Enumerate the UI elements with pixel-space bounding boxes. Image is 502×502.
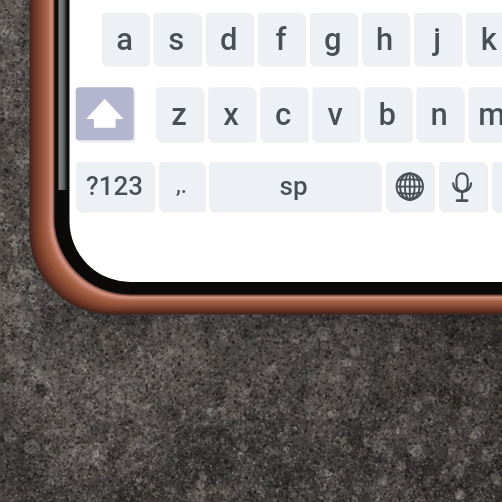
- button[interactable]: d: [206, 13, 253, 64]
- button[interactable]: Change language: [386, 162, 433, 210]
- button[interactable]: Shift: [76, 87, 134, 140]
- button[interactable]: ?123: [76, 162, 153, 210]
- button[interactable]: Space: [209, 162, 380, 210]
- button[interactable]: f: [258, 13, 305, 64]
- button[interactable]: c: [260, 87, 307, 140]
- button[interactable]: Voice input: [439, 162, 486, 210]
- button[interactable]: a: [102, 13, 149, 64]
- button[interactable]: j: [414, 13, 461, 64]
- button[interactable]: g: [310, 13, 357, 64]
- button[interactable]: s: [154, 13, 201, 64]
- button[interactable]: v: [312, 87, 359, 140]
- button[interactable]: Comma: [159, 162, 204, 210]
- button[interactable]: b: [364, 87, 411, 140]
- button[interactable]: n: [416, 87, 463, 140]
- button[interactable]: h: [362, 13, 409, 64]
- button[interactable]: m: [468, 87, 502, 140]
- button[interactable]: z: [156, 87, 203, 140]
- button[interactable]: x: [208, 87, 255, 140]
- button[interactable]: k: [466, 13, 502, 64]
